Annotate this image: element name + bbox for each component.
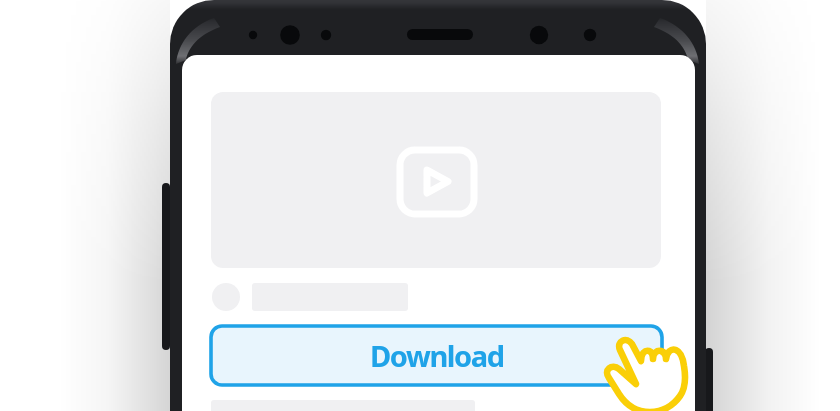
button[interactable]: Download: [211, 326, 662, 385]
staticText: Download: [370, 336, 504, 375]
button[interactable]: Author: [211, 283, 411, 312]
